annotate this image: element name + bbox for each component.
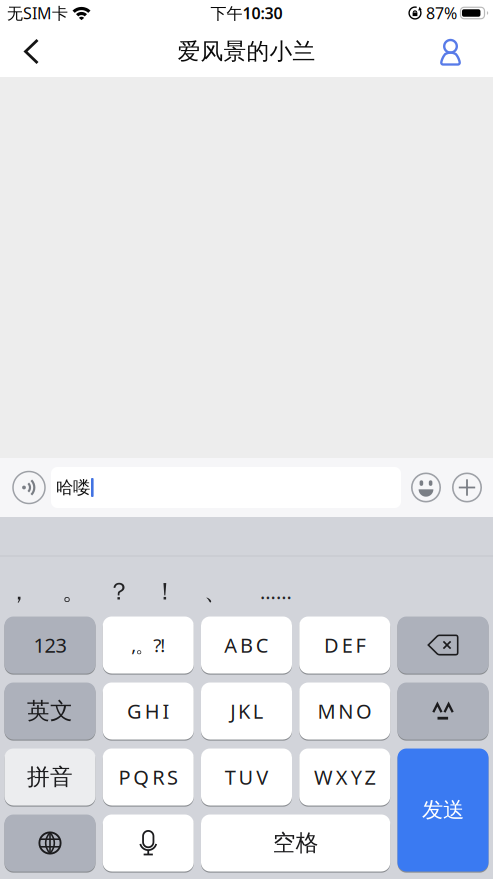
button[interactable]: 拼音 <box>4 748 95 805</box>
button[interactable]: Next keyboard <box>4 814 95 871</box>
staticText: 、 <box>204 577 228 606</box>
staticText: B <box>240 632 253 658</box>
staticText: U <box>238 764 253 790</box>
button[interactable]: 哈喽 <box>51 467 401 508</box>
staticText: 哈喽 <box>56 477 90 498</box>
staticText: ？ <box>107 577 131 606</box>
staticText: V <box>256 764 268 790</box>
button[interactable]: G <box>103 682 194 739</box>
staticText: 拼音 <box>27 763 73 791</box>
staticText: D <box>324 632 339 658</box>
staticText: N <box>338 698 353 724</box>
staticText: T <box>225 764 236 790</box>
staticText: A <box>224 632 237 658</box>
button[interactable]: D <box>299 616 390 673</box>
button[interactable]: M <box>299 682 390 739</box>
button[interactable]: 、 <box>194 569 238 613</box>
staticText: H <box>145 698 160 724</box>
staticText: Z <box>364 764 375 790</box>
staticText: M <box>317 698 335 724</box>
staticText: …… <box>260 578 292 605</box>
staticText: R <box>152 764 164 790</box>
button[interactable]: T <box>201 748 292 805</box>
button[interactable]: Back <box>0 26 51 77</box>
button[interactable]: ,。?! <box>103 616 194 673</box>
staticText: G <box>127 698 142 724</box>
button[interactable]: 。 <box>52 569 96 613</box>
button[interactable]: Dictate <box>103 814 194 871</box>
staticText: C <box>256 632 269 658</box>
button[interactable]: Contact <box>427 26 493 77</box>
staticText: X <box>336 764 348 790</box>
staticText: ,。?! <box>131 633 165 657</box>
staticText: W <box>314 764 333 790</box>
staticText: K <box>238 698 250 724</box>
staticText: 发送 <box>422 797 464 823</box>
staticText: ！ <box>153 577 177 606</box>
button[interactable]: 空格 <box>201 814 390 871</box>
button[interactable]: 英文 <box>4 682 95 739</box>
button[interactable]: 123 <box>4 616 95 673</box>
button[interactable]: …… <box>246 569 306 613</box>
staticText: J <box>230 698 235 724</box>
staticText: 空格 <box>273 829 319 857</box>
button[interactable]: P <box>103 748 194 805</box>
staticText: 英文 <box>27 697 73 725</box>
button[interactable]: A <box>201 616 292 673</box>
button[interactable]: ！ <box>143 569 187 613</box>
staticText: F <box>356 632 366 658</box>
button[interactable]: W <box>299 748 390 805</box>
staticText: ， <box>7 577 31 606</box>
staticText: L <box>253 698 263 724</box>
button[interactable]: 发送 <box>397 748 488 871</box>
button[interactable]: Word segment <box>397 682 488 739</box>
staticText: 下午10:30 <box>210 2 282 24</box>
button[interactable]: Voice input <box>0 470 46 504</box>
staticText: Y <box>351 764 362 790</box>
button[interactable]: ？ <box>97 569 141 613</box>
staticText: 无SIM卡 <box>7 2 68 24</box>
staticText: 123 <box>33 632 66 658</box>
button[interactable]: J <box>201 682 292 739</box>
staticText: P <box>118 764 130 790</box>
staticText: O <box>356 698 372 724</box>
staticText: 87% <box>426 2 457 24</box>
staticText: S <box>167 764 178 790</box>
button[interactable]: Stickers <box>401 472 441 502</box>
staticText: I <box>163 698 170 724</box>
button[interactable]: ， <box>0 569 41 613</box>
staticText: 爱风景的小兰 <box>177 38 315 65</box>
staticText: E <box>342 632 353 658</box>
button[interactable]: More <box>441 472 482 502</box>
button[interactable]: Delete <box>397 616 488 673</box>
staticText: 。 <box>62 577 86 606</box>
staticText: Q <box>133 764 149 790</box>
